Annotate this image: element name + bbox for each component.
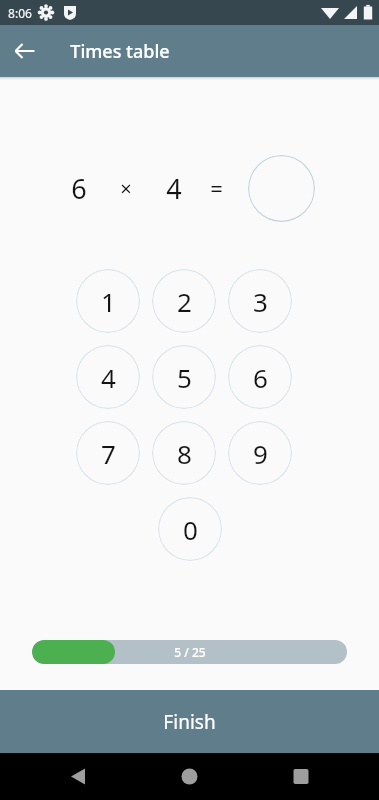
staticText: 8 bbox=[177, 436, 192, 471]
button[interactable]: 1 bbox=[76, 269, 140, 333]
staticText: 8:06 bbox=[8, 5, 32, 21]
staticText: 6 bbox=[253, 360, 268, 395]
staticText: × bbox=[120, 175, 132, 202]
button[interactable]: 3 bbox=[228, 269, 292, 333]
button[interactable]: 5 / 25 bbox=[32, 640, 347, 664]
button[interactable]: 7 bbox=[76, 421, 140, 485]
staticText: 1 bbox=[101, 284, 116, 319]
button[interactable]: 0 bbox=[158, 497, 222, 561]
staticText: 2 bbox=[177, 284, 192, 319]
staticText: 0 bbox=[183, 512, 198, 547]
button[interactable]: Recents bbox=[278, 755, 322, 799]
button[interactable]: 5 bbox=[152, 345, 216, 409]
button[interactable]: Answer bbox=[248, 155, 315, 222]
staticText: 5 / 25 bbox=[174, 644, 206, 660]
staticText: 9 bbox=[253, 436, 268, 471]
button[interactable]: 9 bbox=[228, 421, 292, 485]
button[interactable]: 8 bbox=[152, 421, 216, 485]
staticText: 4 bbox=[101, 360, 116, 395]
staticText: 7 bbox=[101, 436, 116, 471]
staticText: Finish bbox=[163, 709, 216, 735]
button[interactable]: 6 bbox=[228, 345, 292, 409]
staticText: = bbox=[210, 173, 223, 203]
staticText: Times table bbox=[70, 39, 170, 64]
button[interactable]: Back bbox=[58, 755, 102, 799]
button[interactable]: 4 bbox=[76, 345, 140, 409]
staticText: 4 bbox=[166, 170, 182, 207]
staticText: 3 bbox=[253, 284, 268, 319]
button[interactable]: Home bbox=[168, 755, 212, 799]
button[interactable]: Finish bbox=[0, 690, 379, 753]
button[interactable]: 2 bbox=[152, 269, 216, 333]
button[interactable]: Back bbox=[3, 29, 47, 73]
staticText: 5 bbox=[177, 360, 192, 395]
staticText: 6 bbox=[71, 170, 87, 207]
